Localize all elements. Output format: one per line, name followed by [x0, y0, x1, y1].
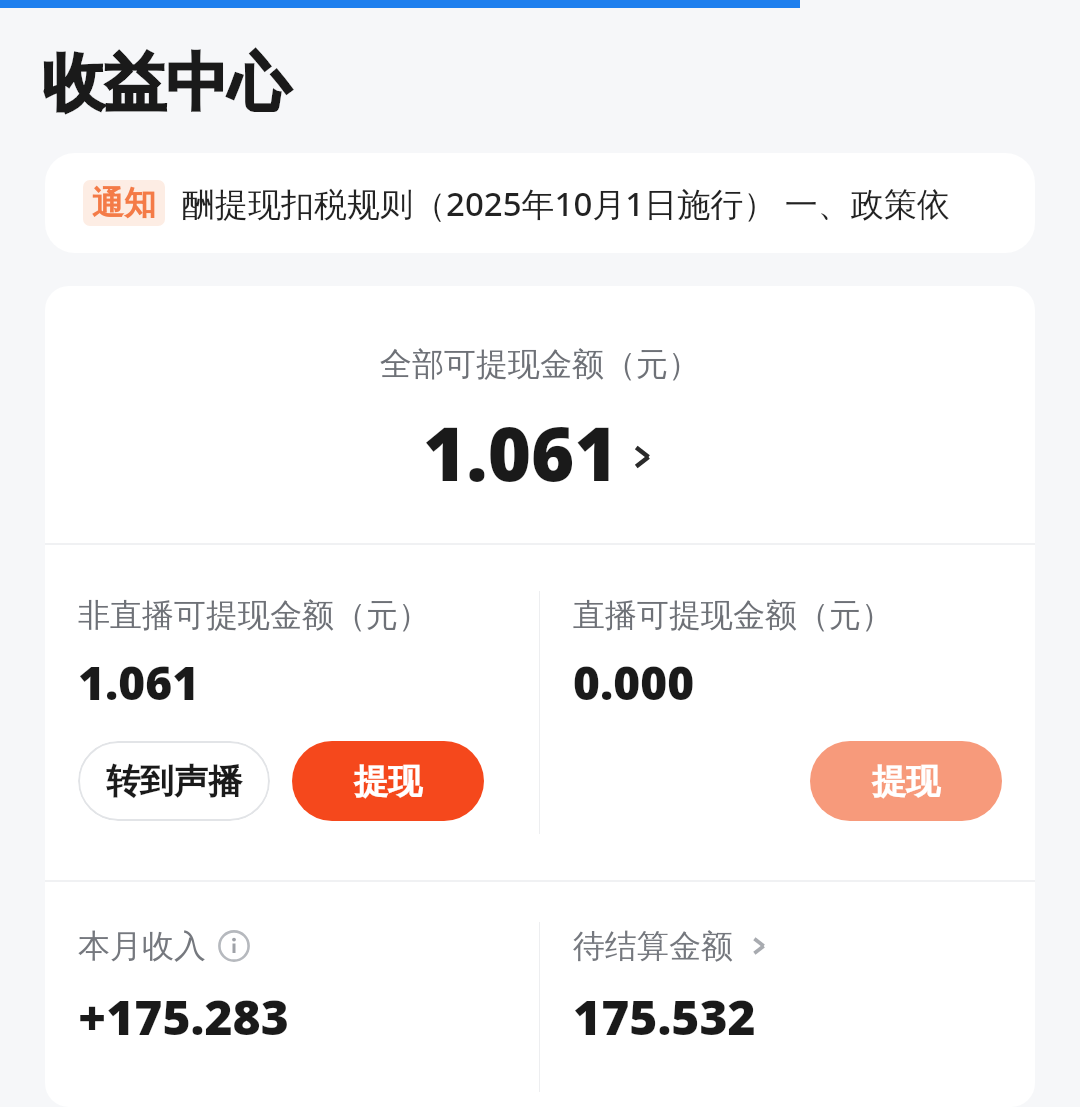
staticText: 本月收入: [78, 926, 206, 966]
staticText: 提现: [354, 760, 422, 803]
staticText: 非直播可提现金额（元）: [78, 595, 430, 635]
button[interactable]: Info about monthly income: [218, 930, 250, 962]
staticText: 全部可提现金额（元）: [380, 344, 700, 384]
staticText: 1.061: [78, 651, 200, 714]
staticText: 175.532: [573, 984, 756, 1049]
button[interactable]: 提现: [810, 741, 1002, 821]
staticText: 1.061: [423, 402, 618, 503]
staticText: 转到声播: [106, 760, 242, 803]
button[interactable]: 通知: [45, 153, 1035, 253]
staticText: 直播可提现金额（元）: [573, 595, 893, 635]
button[interactable]: 转到声播: [78, 741, 270, 821]
staticText: 酬提现扣税规则（2025年10月1日施行） 一、政策依: [182, 181, 950, 226]
staticText: 0.000: [573, 651, 695, 714]
staticText: 待结算金额: [573, 926, 733, 966]
staticText: 通知: [92, 183, 156, 223]
button[interactable]: 全部可提现金额（元）: [45, 286, 1035, 543]
button[interactable]: 提现: [292, 741, 484, 821]
staticText: +175.283: [78, 984, 289, 1049]
button[interactable]: 待结算金额: [540, 882, 1035, 1102]
staticText: 收益中心: [42, 44, 290, 122]
button[interactable]: 本月收入: [45, 882, 539, 1102]
staticText: 提现: [872, 760, 940, 803]
